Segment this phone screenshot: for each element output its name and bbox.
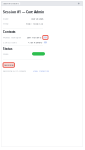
button[interactable]: More options — [77, 2, 80, 5]
staticText: May 28 2025 — [31, 17, 43, 20]
staticText: State — [3, 52, 8, 55]
button[interactable]: Recording — [3, 63, 14, 67]
button[interactable]: View transcript — [33, 69, 49, 72]
staticText: Contacts — [3, 30, 15, 34]
staticText: Session Details — [3, 2, 19, 5]
staticText: Alex Romero — [28, 41, 42, 44]
staticText: View transcript — [33, 69, 49, 72]
staticText: Sam Holland — [27, 36, 42, 39]
staticText: Date — [3, 17, 8, 20]
staticText: Project Manager — [3, 36, 21, 39]
staticText: Status — [3, 47, 12, 51]
staticText: 9:00 – 10:30 AM — [26, 22, 43, 25]
staticText: Recording with consent — [3, 69, 26, 72]
staticText: Consultant — [3, 41, 17, 44]
button[interactable]: Session Details — [2, 2, 20, 5]
staticText: Session #1 — Core Admin — [3, 10, 44, 14]
button[interactable]: Contact Sam Holland — [43, 35, 48, 39]
button[interactable]: Contact Alex Romero — [43, 40, 48, 44]
staticText: Time — [3, 22, 8, 25]
staticText: Recording — [4, 63, 13, 66]
